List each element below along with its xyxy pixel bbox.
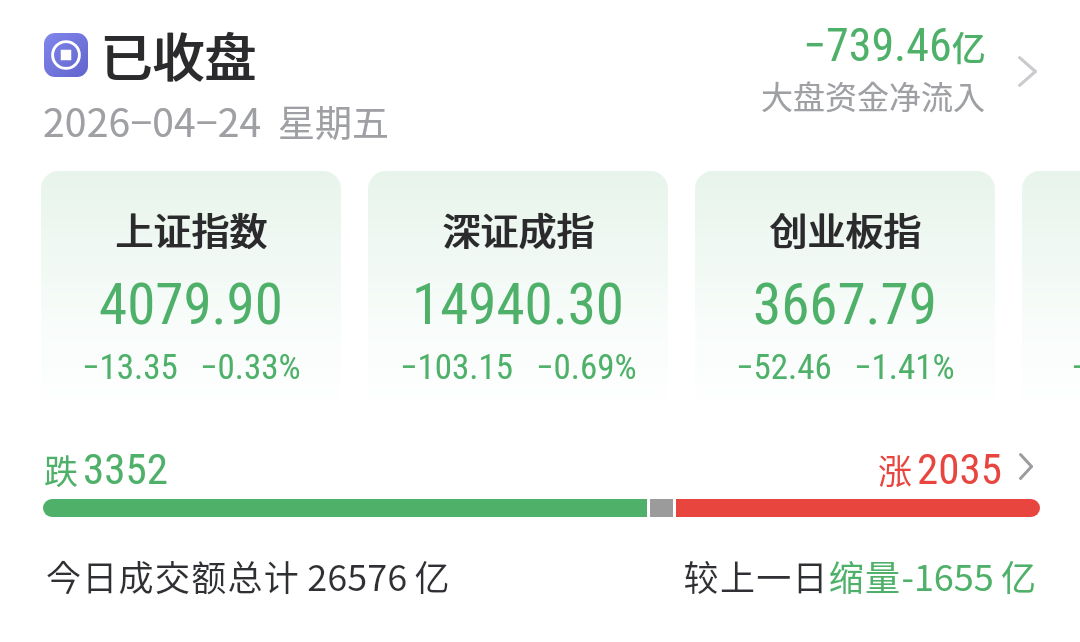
staticText: 涨2035: [878, 444, 1002, 494]
staticText: 上证指数: [115, 201, 268, 256]
button[interactable]: 上证指数: [41, 171, 341, 416]
staticText: 已收盘: [101, 17, 258, 92]
staticText: 已收盘: [100, 17, 257, 92]
other: 大盘资金净流入详情: [1001, 41, 1053, 101]
staticText: −739.46亿: [803, 18, 986, 72]
staticText: −0.33%: [200, 347, 301, 388]
staticText: 跌3352: [44, 444, 168, 494]
staticText: −0.69%: [536, 347, 637, 388]
staticText: −52.46: [736, 347, 832, 388]
staticText: 2026−04−24 星期五: [43, 92, 390, 148]
staticText: −1.41%: [854, 347, 955, 388]
button[interactable]: [30, 434, 1054, 530]
staticText: 较上一日缩量-1655 亿: [636, 549, 1036, 601]
staticText: 深证成指: [443, 201, 596, 256]
button[interactable]: 深证成指: [368, 171, 668, 416]
staticText: 深证成指: [442, 201, 595, 256]
staticText: 今日成交额总计 26576 亿: [46, 549, 450, 601]
staticText: −13.35: [82, 347, 178, 388]
button[interactable]: 北证50: [1022, 171, 1080, 416]
other: 涨跌家数详情: [878, 444, 1033, 494]
staticText: 14940.30: [412, 271, 624, 338]
staticText: 创业板指: [769, 201, 922, 256]
button[interactable]: 市场状态: [44, 33, 88, 77]
staticText: 4079.90: [99, 271, 283, 338]
staticText: 上证指数: [116, 201, 269, 256]
staticText: 创业板指: [770, 201, 923, 256]
staticText: 3667.79: [753, 271, 937, 338]
staticText: 大盘资金净流入: [761, 72, 986, 118]
staticText: −103.15: [400, 347, 514, 388]
button[interactable]: −739.46亿: [598, 18, 1053, 118]
button[interactable]: 创业板指: [695, 171, 995, 416]
staticText: −9.22: [1071, 347, 1080, 388]
